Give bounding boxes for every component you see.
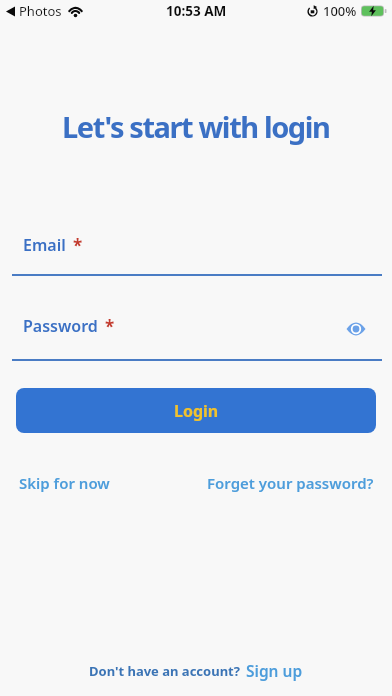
staticText: Email bbox=[23, 234, 66, 256]
button[interactable]: Skip for now bbox=[19, 473, 110, 493]
button[interactable] bbox=[344, 319, 368, 339]
staticText: Password bbox=[23, 315, 98, 337]
staticText: Login bbox=[174, 400, 219, 422]
staticText: * bbox=[105, 315, 115, 338]
staticText: 10:53 AM bbox=[166, 2, 227, 20]
staticText: Let's start with login bbox=[62, 107, 330, 146]
staticText: 100% bbox=[323, 2, 357, 20]
staticText: Photos bbox=[19, 2, 62, 20]
button[interactable]: Forget your password? bbox=[207, 473, 374, 493]
staticText: * bbox=[73, 234, 83, 257]
button[interactable]: Login bbox=[16, 388, 376, 433]
staticText: Don't have an account? bbox=[89, 662, 240, 680]
button[interactable]: Sign up bbox=[246, 660, 303, 681]
